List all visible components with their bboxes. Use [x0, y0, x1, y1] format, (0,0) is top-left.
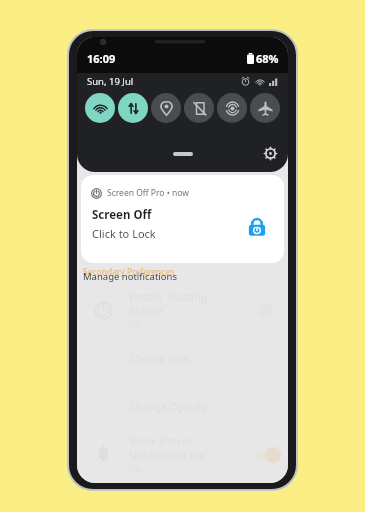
button[interactable]: Location: [151, 93, 181, 123]
button[interactable]: Show Icon in Notification Bar: [77, 431, 288, 478]
button[interactable]: Auto rotate off: [184, 93, 214, 123]
staticText: Screen Off: [92, 207, 152, 223]
staticText: Sun, 19 Jul: [87, 75, 134, 88]
staticText: Manage notifications: [83, 270, 177, 283]
staticText: Screen Off Pro • now: [107, 187, 189, 199]
staticText: 68%: [256, 51, 279, 66]
button[interactable]: Lock Sound: [77, 479, 288, 483]
button[interactable]: Lock screen: [244, 214, 270, 240]
button[interactable]: Settings: [262, 145, 278, 161]
button[interactable]: Wi-Fi: [85, 93, 115, 123]
button[interactable]: Mobile data: [118, 93, 148, 123]
button[interactable]: Airplane mode: [250, 93, 280, 123]
staticText: 16:09: [87, 51, 116, 66]
staticText: Secondary Preferences: [83, 266, 175, 278]
button[interactable]: Hotspot: [217, 93, 247, 123]
button[interactable]: Manage notifications: [83, 270, 177, 283]
button[interactable]: Screen Off Pro • now: [81, 175, 284, 263]
staticText: Click to Lock: [92, 226, 156, 241]
button[interactable]: Show Icon in Notification Bar toggle: [244, 443, 288, 467]
